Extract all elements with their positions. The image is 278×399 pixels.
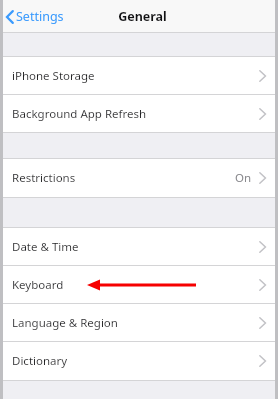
staticText: Language & Region: [12, 315, 118, 331]
button[interactable]: Keyboard: [3, 266, 275, 303]
button[interactable]: Settings: [3, 4, 70, 29]
button[interactable]: Language & Region: [3, 304, 275, 341]
staticText: Settings: [16, 8, 64, 25]
staticText: Restrictions: [12, 170, 76, 186]
staticText: General: [118, 8, 167, 25]
staticText: Background App Refresh: [12, 106, 147, 122]
staticText: Date & Time: [12, 239, 79, 255]
button[interactable]: Date & Time: [3, 228, 275, 265]
staticText: Keyboard: [12, 277, 64, 293]
staticText: iPhone Storage: [12, 68, 95, 84]
staticText: On: [235, 170, 252, 186]
button[interactable]: Restrictions: [3, 159, 275, 197]
button[interactable]: Background App Refresh: [3, 95, 275, 132]
button[interactable]: iPhone Storage: [3, 57, 275, 94]
button[interactable]: Dictionary: [3, 342, 275, 380]
staticText: Dictionary: [12, 353, 68, 369]
